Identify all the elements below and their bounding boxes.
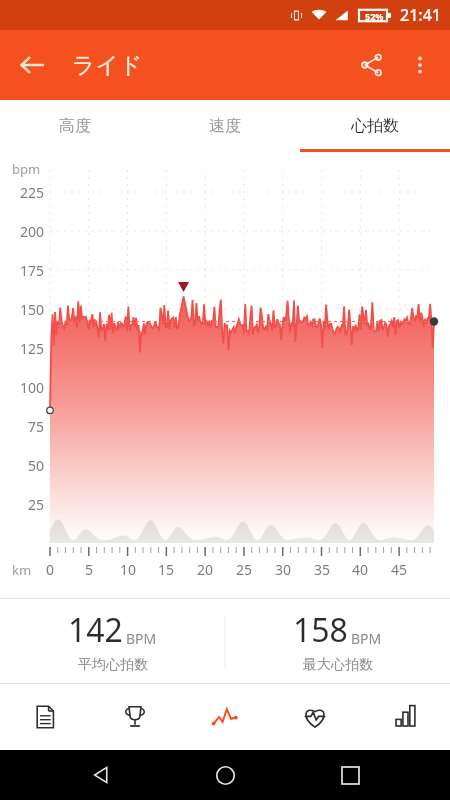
staticText: 15 — [152, 560, 180, 579]
staticText: 40 — [346, 560, 374, 579]
staticText: 20 — [191, 560, 219, 579]
button[interactable]: 158 — [225, 598, 450, 684]
button[interactable]: Heart rate — [270, 684, 360, 750]
staticText: 高度 — [59, 116, 91, 136]
staticText: 100 — [6, 378, 44, 397]
staticText: 142 — [68, 608, 123, 652]
button[interactable]: More options — [396, 41, 444, 89]
staticText: 速度 — [209, 116, 241, 136]
staticText: BPM — [351, 629, 382, 648]
button[interactable]: Back — [10, 43, 54, 87]
staticText: 125 — [6, 339, 44, 358]
staticText: 平均心拍数 — [78, 656, 148, 674]
button[interactable]: Activity details — [0, 684, 90, 750]
staticText: 25 — [230, 560, 258, 579]
staticText: 21:41 — [400, 4, 441, 26]
button[interactable]: 142 — [0, 598, 225, 684]
staticText: 200 — [6, 222, 44, 241]
button[interactable]: 高度 — [0, 100, 150, 152]
staticText: 75 — [6, 417, 44, 436]
staticText: 158 — [293, 608, 348, 652]
staticText: BPM — [126, 629, 157, 648]
staticText: 175 — [6, 261, 44, 280]
staticText: 25 — [6, 495, 44, 514]
staticText: 50 — [6, 456, 44, 475]
staticText: ライド — [72, 51, 143, 80]
staticText: 30 — [269, 560, 297, 579]
staticText: 5 — [75, 560, 103, 579]
button[interactable]: Recents — [326, 751, 374, 799]
button[interactable]: Achievements — [90, 684, 180, 750]
button[interactable]: Charts — [180, 684, 270, 750]
staticText: 心拍数 — [351, 116, 399, 136]
staticText: 150 — [6, 300, 44, 319]
button[interactable]: Back — [77, 751, 125, 799]
staticText: 最大心拍数 — [303, 656, 373, 674]
button[interactable]: Home — [201, 751, 249, 799]
button[interactable]: Share — [348, 41, 396, 89]
staticText: 225 — [6, 183, 44, 202]
button[interactable]: 心拍数 — [300, 100, 450, 152]
staticText: 52% — [365, 10, 384, 22]
staticText: 10 — [114, 560, 142, 579]
staticText: 0 — [36, 560, 64, 579]
staticText: 35 — [308, 560, 336, 579]
button[interactable]: Statistics — [360, 684, 450, 750]
staticText: bpm — [12, 160, 41, 178]
button[interactable]: 速度 — [150, 100, 300, 152]
staticText: 45 — [385, 560, 413, 579]
staticText: km — [12, 561, 32, 579]
